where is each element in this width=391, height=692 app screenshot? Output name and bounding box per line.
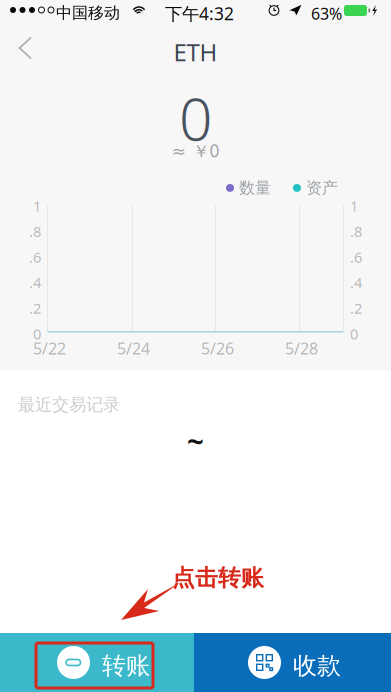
staticText: .6 [350,247,362,267]
staticText: .4 [350,273,362,292]
button[interactable]: 转账 [0,633,194,692]
staticText: .8 [350,222,362,241]
staticText: 5/26 [201,338,234,359]
staticText: .8 [29,222,41,241]
staticText: ~ [187,421,204,460]
staticText: ETH [173,36,217,68]
staticText: 资产 [306,178,338,198]
staticText: .2 [29,298,41,318]
staticText: 最近交易记录 [18,394,120,415]
staticText: 收款 [293,651,341,680]
staticText: 转账 [102,651,150,680]
staticText: 5/24 [117,338,150,359]
staticText: 1 [350,196,358,215]
staticText: 5/22 [33,338,66,359]
button[interactable]: Back [0,22,45,68]
staticText: .6 [29,247,41,267]
staticText: 0 [179,79,212,157]
staticText: 5/28 [285,338,318,359]
staticText: ≈ ￥0 [171,139,219,162]
staticText: 下午4:32 [165,2,234,25]
staticText: 中国移动 [56,3,120,23]
staticText: .2 [350,298,362,318]
staticText: .4 [29,273,41,292]
staticText: 数量 [239,178,271,198]
staticText: 点击转账 [172,564,264,592]
staticText: 1 [33,196,41,215]
staticText: 0 [33,324,41,343]
staticText: 63% [311,3,342,24]
staticText: 0 [350,324,358,343]
button[interactable]: 收款 [194,633,391,692]
